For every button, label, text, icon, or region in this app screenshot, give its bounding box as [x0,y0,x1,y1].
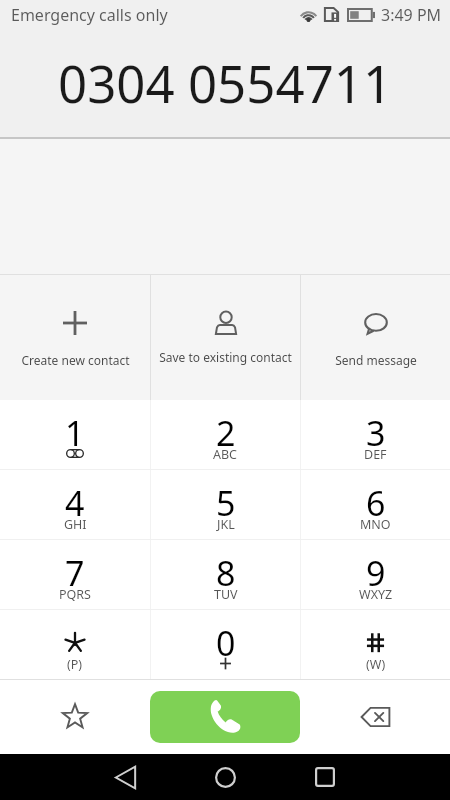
button[interactable]: Back [95,754,155,800]
staticText: 9 [366,550,386,596]
button[interactable]: Call [150,691,300,743]
button[interactable]: Favorites [0,680,150,754]
staticText: Create new contact [21,352,130,368]
button[interactable]: Send message [301,275,450,400]
button[interactable]: 5 [151,470,300,539]
staticText: 3 [366,410,386,456]
button[interactable]: 6 [301,470,450,539]
button[interactable]: 7 [0,540,150,609]
staticText: 2 [216,410,236,456]
staticText: 7 [65,550,85,596]
staticText: MNO [360,516,391,533]
button[interactable]: Save to existing contact [151,275,300,400]
staticText: ABC [213,446,238,463]
staticText: TUV [214,586,238,603]
button[interactable]: Recents [295,754,355,800]
staticText: JKL [217,516,235,533]
staticText: 5 [216,480,236,526]
staticText: 6 [366,480,386,526]
staticText: WXYZ [359,586,393,603]
staticText: 4 [65,480,85,526]
staticText: DEF [364,446,387,463]
button[interactable]: 1 [0,400,150,469]
staticText: 3:49 PM [381,4,442,26]
staticText: (P) [67,656,83,673]
button[interactable]: (W) [301,610,450,679]
staticText: Emergency calls only [11,4,168,26]
staticText: GHI [64,516,87,533]
button[interactable]: Create new contact [0,275,150,400]
button[interactable]: (P) [0,610,150,679]
staticText: 0 [216,620,236,666]
staticText: PQRS [59,586,91,603]
staticText: 0304 0554711 [58,48,393,117]
button[interactable]: 9 [301,540,450,609]
button[interactable]: 0 [151,610,300,679]
staticText: Save to existing contact [159,349,292,365]
button[interactable]: Backspace [300,680,450,754]
button[interactable]: 2 [151,400,300,469]
button[interactable]: Home [195,754,255,800]
staticText: 8 [216,550,236,596]
staticText: (W) [366,656,386,673]
button[interactable]: 3 [301,400,450,469]
staticText: 1 [65,410,85,456]
button[interactable]: 8 [151,540,300,609]
staticText: Send message [335,352,417,368]
button[interactable]: 4 [0,470,150,539]
